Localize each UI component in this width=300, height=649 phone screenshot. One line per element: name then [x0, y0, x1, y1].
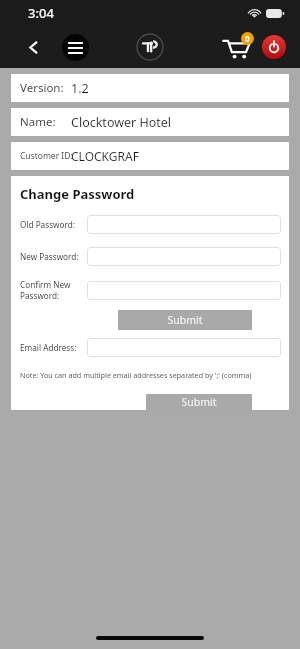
button[interactable]: Email Address: [87, 338, 281, 357]
staticText: CLOCKGRAF [71, 148, 139, 164]
staticText: 3:04 [28, 4, 54, 22]
staticText: Submit [181, 395, 217, 409]
button[interactable]: Menu [62, 34, 89, 61]
button[interactable]: Confirm New [87, 281, 281, 300]
button[interactable]: Customer ID: [11, 142, 289, 170]
staticText: Email Address: [20, 342, 77, 353]
button[interactable]: Power [262, 35, 286, 59]
staticText: Submit [167, 313, 203, 327]
button[interactable]: Back [20, 34, 46, 60]
button[interactable]: Logo [135, 32, 165, 62]
staticText: New Password: [20, 251, 79, 262]
staticText: Clocktower Hotel [71, 114, 172, 131]
staticText: 0 [245, 33, 250, 44]
staticText: Password: [20, 290, 60, 301]
staticText: Name: [20, 114, 56, 130]
staticText: Customer ID: [20, 150, 73, 162]
button[interactable]: New Password: [87, 247, 281, 266]
button[interactable]: Old Password: [87, 215, 281, 234]
button[interactable]: Name: [11, 108, 289, 136]
button[interactable]: Cart [222, 34, 252, 60]
staticText: Note: You can add multiple email address… [20, 370, 252, 380]
staticText: 1.2 [71, 80, 89, 97]
button[interactable]: Submit [146, 394, 252, 410]
button[interactable]: Version: [11, 74, 289, 102]
staticText: Old Password: [20, 219, 75, 230]
staticText: Version: [20, 80, 64, 96]
staticText: Change Password [20, 185, 135, 203]
staticText: Confirm New [20, 279, 71, 290]
button[interactable]: Submit [118, 310, 252, 330]
